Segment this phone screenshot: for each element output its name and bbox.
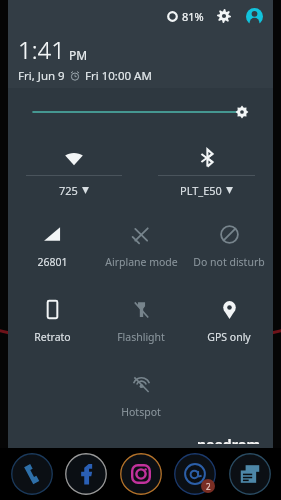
button[interactable]: News xyxy=(227,451,273,497)
button[interactable]: Retrato xyxy=(8,285,97,344)
staticText: PLT_E50 xyxy=(180,183,222,198)
button[interactable]: Phone xyxy=(9,451,55,497)
staticText: Airplane mode xyxy=(105,255,178,269)
button[interactable]: Email xyxy=(172,451,218,497)
staticText: Flashlight xyxy=(117,330,165,344)
button[interactable]: Hotspot xyxy=(97,360,185,419)
button[interactable]: PLT_E50 xyxy=(140,142,273,198)
staticText: Fri, Jun 9 xyxy=(18,68,65,84)
button[interactable]: Airplane mode xyxy=(97,210,185,269)
staticText: Hotspot xyxy=(121,405,161,419)
staticText: PM xyxy=(69,47,88,63)
button[interactable]: User xyxy=(245,7,263,25)
button[interactable]: GPS only xyxy=(185,285,273,344)
staticText: GPS only xyxy=(207,330,251,344)
button[interactable]: Brightness xyxy=(8,88,273,136)
staticText: 2 xyxy=(206,481,211,492)
button[interactable]: Flashlight xyxy=(97,285,185,344)
staticText: 26801 xyxy=(37,255,68,269)
button[interactable]: 725 xyxy=(8,142,140,198)
button[interactable]: Facebook xyxy=(63,451,109,497)
staticText: 81% xyxy=(182,9,204,24)
staticText: 725 xyxy=(59,183,78,198)
staticText: needrom xyxy=(197,435,261,444)
staticText: 1:41 xyxy=(18,33,65,66)
staticText: Fri 10:00 AM xyxy=(85,68,152,84)
button[interactable]: Do not disturb xyxy=(185,210,273,269)
button[interactable]: 26801 xyxy=(8,210,97,269)
staticText: Retrato xyxy=(34,330,71,344)
staticText: Do not disturb xyxy=(193,255,265,269)
button[interactable]: Instagram xyxy=(118,451,164,497)
button[interactable]: Settings xyxy=(215,7,233,25)
